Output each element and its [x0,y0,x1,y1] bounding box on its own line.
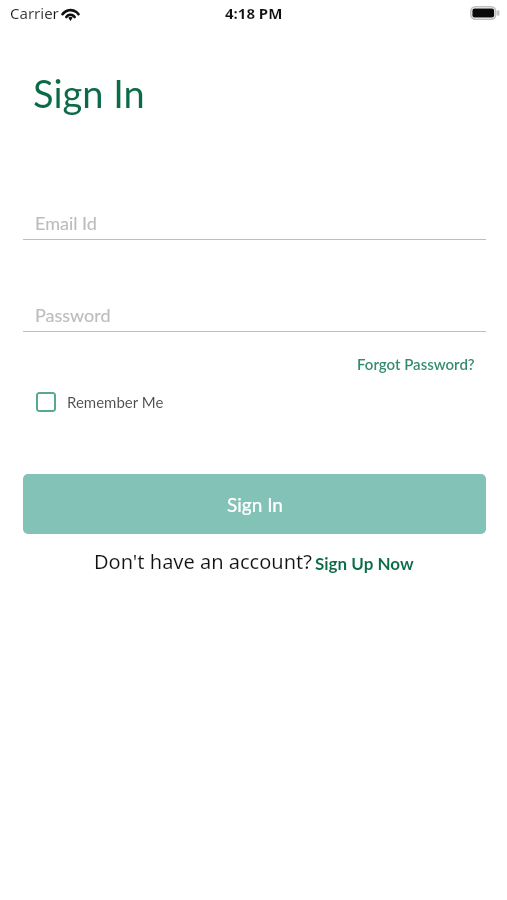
other: Battery full [470,6,500,20]
staticText: Carrier [10,3,59,23]
staticText: Don't have an account? [94,548,312,575]
staticText: Email Id [35,212,97,234]
other: Wi-Fi signal [61,5,80,20]
staticText: Password [35,304,111,326]
staticText: Sign In [227,493,283,516]
staticText: 4:18 PM [225,3,283,23]
staticText: Sign In [33,70,145,116]
button[interactable]: Forgot Password? [349,350,483,378]
button[interactable]: Sign Up Now [315,553,414,573]
button[interactable]: Sign In [23,474,486,534]
staticText: Remember Me [67,393,164,411]
staticText: Forgot Password? [357,355,475,373]
button[interactable]: Remember Me [36,392,164,412]
